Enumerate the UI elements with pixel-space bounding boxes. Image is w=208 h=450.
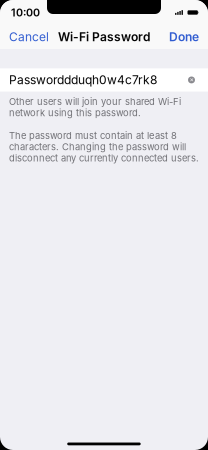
staticText: dduqh0w4c7rk8 — [64, 73, 157, 87]
staticText: ✕ — [189, 77, 193, 83]
staticText: Done — [169, 30, 199, 44]
staticText: Password — [9, 73, 64, 87]
button[interactable]: Clear text — [183, 68, 199, 91]
staticText: Other users will join your shared Wi-Fi … — [9, 96, 199, 164]
staticText: 10:00 — [11, 6, 40, 19]
staticText: Wi-Fi Password — [58, 30, 150, 44]
staticText: Cancel — [9, 30, 49, 44]
button[interactable]: Cancel — [9, 25, 49, 49]
button[interactable]: Done — [159, 25, 199, 49]
